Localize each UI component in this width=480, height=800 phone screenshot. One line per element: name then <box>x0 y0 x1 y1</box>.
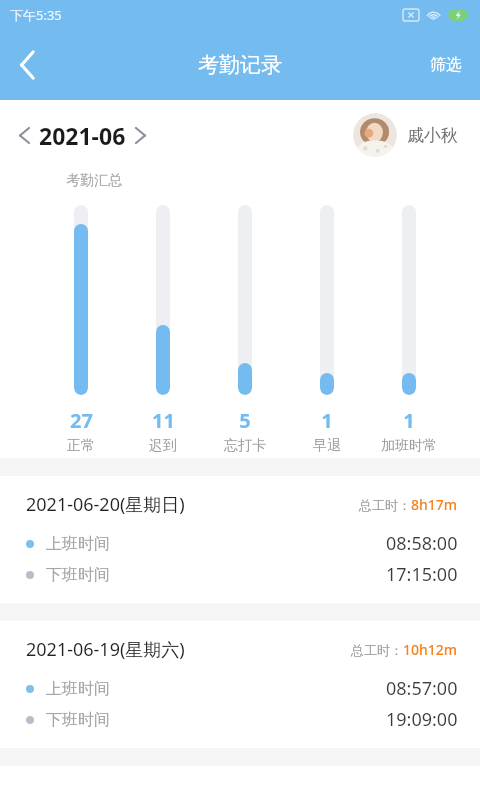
staticText: 上班时间 <box>46 534 110 554</box>
staticText: 2021-06-20(星期日) <box>26 492 185 517</box>
button[interactable]: Back <box>0 37 56 93</box>
staticText: 早退 <box>313 437 341 452</box>
staticText: 10h12m <box>403 640 458 659</box>
staticText: 筛选 <box>430 55 462 75</box>
staticText: 8h17m <box>411 495 458 514</box>
staticText: 下午5:35 <box>10 6 62 24</box>
staticText: 考勤汇总 <box>66 172 122 190</box>
staticText: 1 <box>321 407 333 434</box>
staticText: 17:15:00 <box>386 562 458 587</box>
staticText: 考勤记录 <box>198 52 282 78</box>
staticText: 2021-06-19(星期六) <box>26 637 185 662</box>
staticText: 戚小秋 <box>407 125 458 146</box>
staticText: 上班时间 <box>46 679 110 699</box>
staticText: 下班时间 <box>46 565 110 585</box>
staticText: 2021-06 <box>39 120 126 151</box>
staticText: 1 <box>403 407 415 434</box>
staticText: 5 <box>239 407 251 434</box>
staticText: 08:58:00 <box>386 531 458 556</box>
staticText: 迟到 <box>149 437 177 452</box>
staticText: 加班时常 <box>381 437 437 452</box>
button[interactable]: 筛选 <box>412 30 480 100</box>
staticText: 正常 <box>67 437 95 452</box>
staticText: 忘打卡 <box>224 437 266 452</box>
staticText: 总工时： <box>359 497 411 513</box>
staticText: 下班时间 <box>46 710 110 730</box>
staticText: 总工时： <box>351 642 403 658</box>
button[interactable]: 2021-06-19(星期六) <box>0 621 480 748</box>
staticText: 27 <box>70 407 93 434</box>
staticText: 11 <box>152 407 175 434</box>
staticText: 08:57:00 <box>386 676 458 701</box>
button[interactable]: 2021-06 <box>20 120 145 151</box>
button[interactable]: 2021-06-20(星期日) <box>0 476 480 603</box>
button[interactable]: 戚小秋 <box>353 113 458 157</box>
staticText: 19:09:00 <box>386 707 458 732</box>
